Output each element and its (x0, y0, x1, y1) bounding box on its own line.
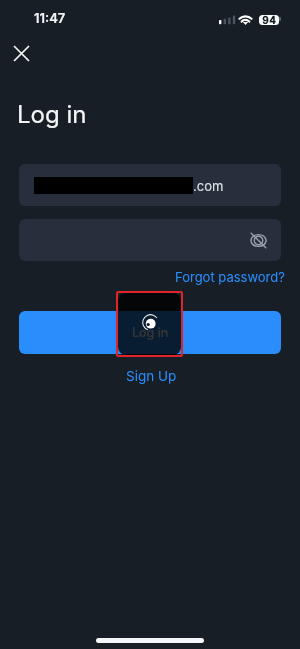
staticText: 11:47 (34, 10, 66, 26)
button[interactable]: Forgot password? (175, 269, 285, 285)
button[interactable]: Sign Up (126, 368, 177, 384)
staticText: Log in (132, 325, 169, 340)
button[interactable]: .com (19, 164, 281, 206)
button[interactable]: Show password (19, 219, 281, 261)
button[interactable]: Show password (246, 228, 270, 252)
staticText: 94 (262, 15, 277, 24)
button[interactable]: Close (6, 38, 36, 68)
button[interactable]: Log in (19, 311, 281, 354)
staticText: Log in (17, 100, 87, 129)
staticText: .com (193, 178, 224, 194)
